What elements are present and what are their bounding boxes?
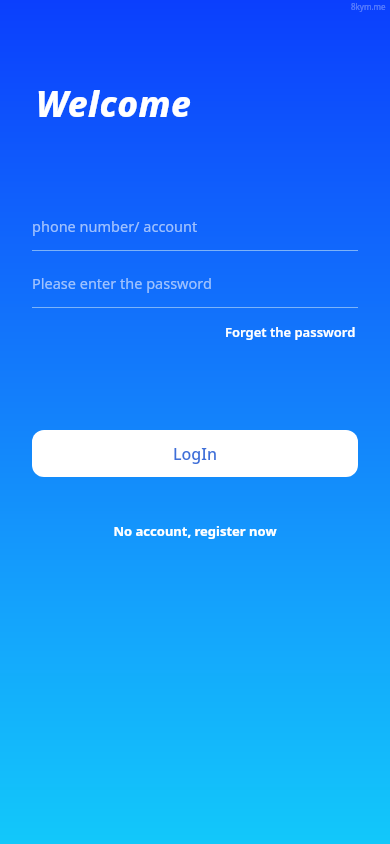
- staticText: LogIn: [173, 443, 217, 465]
- button[interactable]: Please enter the password: [32, 273, 358, 308]
- button[interactable]: LogIn: [32, 430, 358, 477]
- staticText: No account, register now: [113, 522, 277, 540]
- staticText: 8kym.me: [351, 1, 386, 12]
- staticText: Please enter the password: [32, 273, 212, 293]
- button[interactable]: phone number/ account: [32, 216, 358, 251]
- button[interactable]: No account, register now: [107, 518, 283, 544]
- staticText: Welcome: [36, 80, 192, 128]
- staticText: Forget the password: [225, 323, 356, 341]
- button[interactable]: Forget the password: [223, 320, 358, 344]
- staticText: phone number/ account: [32, 216, 198, 236]
